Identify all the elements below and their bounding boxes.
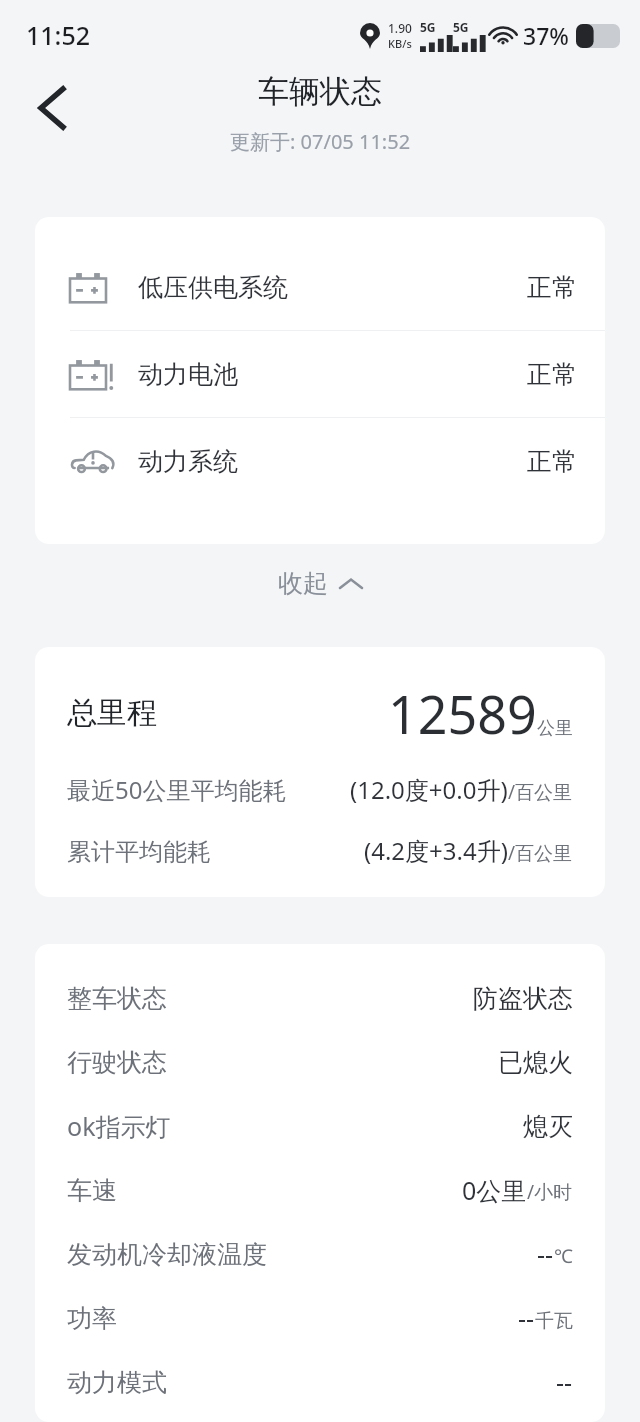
- staticText: 行驶状态: [67, 1047, 167, 1078]
- staticText: --: [556, 1365, 573, 1399]
- staticText: 千瓦: [535, 1309, 573, 1333]
- staticText: (12.0度+0.0升): [350, 773, 508, 806]
- button[interactable]: 动力电池: [35, 331, 605, 417]
- staticText: /百公里: [508, 840, 573, 866]
- button[interactable]: 低压供电系统: [35, 244, 605, 330]
- staticText: 低压供电系统: [138, 272, 288, 303]
- staticText: 5G: [453, 19, 469, 35]
- staticText: --: [518, 1301, 535, 1335]
- staticText: 熄灭: [523, 1111, 573, 1142]
- staticText: ok指示灯: [67, 1109, 171, 1143]
- staticText: (4.2度+3.4升): [364, 834, 508, 867]
- button[interactable]: Back: [20, 76, 84, 140]
- staticText: 动力电池: [138, 359, 238, 390]
- staticText: 公里: [537, 717, 573, 740]
- staticText: 正常: [527, 446, 577, 477]
- staticText: 37%: [523, 20, 569, 51]
- staticText: ℃: [554, 1243, 573, 1269]
- staticText: KB/s: [388, 36, 412, 51]
- button[interactable]: 收起: [0, 544, 640, 622]
- staticText: 11:52: [26, 18, 91, 52]
- staticText: 车辆状态: [258, 72, 382, 111]
- staticText: 已熄火: [498, 1047, 573, 1078]
- staticText: 最近50公里平均能耗: [67, 773, 287, 806]
- staticText: --: [537, 1237, 554, 1271]
- staticText: 1.90: [388, 20, 412, 36]
- staticText: 更新于: 07/05 11:52: [230, 128, 411, 155]
- staticText: 防盗状态: [473, 983, 573, 1014]
- staticText: 发动机冷却液温度: [67, 1239, 267, 1270]
- staticText: 12589: [388, 678, 537, 749]
- staticText: 0公里: [462, 1173, 527, 1207]
- staticText: 正常: [527, 359, 577, 390]
- staticText: 整车状态: [67, 983, 167, 1014]
- staticText: 正常: [527, 272, 577, 303]
- staticText: 5G: [420, 19, 436, 35]
- staticText: 动力模式: [67, 1367, 167, 1398]
- button[interactable]: 动力系统: [35, 418, 605, 504]
- staticText: 车速: [67, 1175, 117, 1206]
- staticText: /百公里: [508, 779, 573, 805]
- staticText: 动力系统: [138, 446, 238, 477]
- staticText: /小时: [527, 1179, 573, 1205]
- staticText: 总里程: [67, 694, 157, 732]
- staticText: 功率: [67, 1303, 117, 1334]
- staticText: 累计平均能耗: [67, 837, 211, 867]
- staticText: 收起: [278, 568, 328, 599]
